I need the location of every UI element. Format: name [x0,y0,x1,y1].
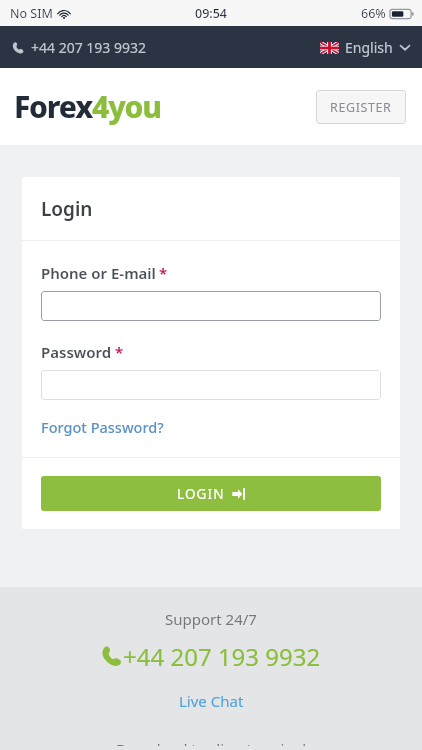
button[interactable]: +44 207 193 9932 [0,32,155,63]
staticText: Download trading terminal [116,739,307,746]
staticText: Login [41,196,93,222]
staticText: English [345,38,393,57]
staticText: Live Chat [179,691,244,711]
staticText: Phone or E-mail [41,263,156,283]
button[interactable]: Download trading terminal [112,735,311,750]
staticText: REGISTER [330,99,392,116]
button[interactable] [41,370,381,400]
other: United Kingdom flag [320,42,339,54]
staticText: Password [41,342,112,362]
staticText: +44 207 193 9932 [123,640,321,673]
staticText: Forex [14,86,92,127]
button[interactable]: REGISTER [316,90,406,124]
staticText: 66% [361,5,386,22]
button[interactable]: United Kingdom flag [312,32,422,63]
button[interactable]: LOGIN [41,476,381,511]
staticText: LOGIN [177,485,225,503]
staticText: 4you [92,86,161,127]
staticText: No SIM [10,5,53,22]
staticText: Forgot Password? [41,417,164,437]
button[interactable]: Live Chat [175,687,248,715]
button[interactable] [41,291,381,321]
staticText: 09:54 [195,5,228,22]
staticText: * [159,263,168,283]
staticText: +44 207 193 9932 [31,38,147,57]
button[interactable]: Forgot Password? [41,414,164,440]
other: Change language [400,44,410,51]
staticText: * [115,342,124,362]
button[interactable]: +44 207 193 9932 [101,640,321,673]
staticText: Support 24/7 [165,609,257,629]
